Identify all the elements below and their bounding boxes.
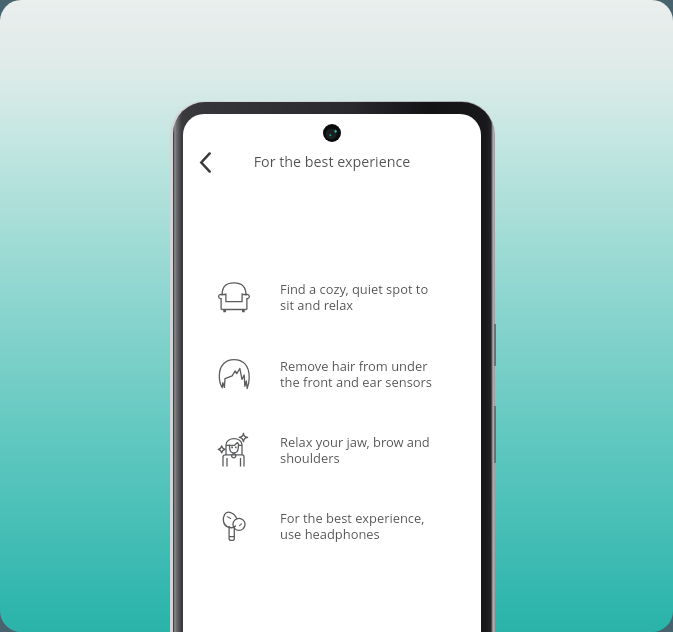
staticText: Relax your jaw, brow and shoulders	[280, 433, 430, 467]
staticText: For the best experience, use headphones	[280, 509, 425, 543]
button[interactable]: Relax your jaw, brow and shoulders	[183, 421, 481, 473]
staticText: Find a cozy, quiet spot to sit and relax	[280, 280, 429, 314]
button[interactable]: For the best experience, use headphones	[183, 497, 481, 549]
staticText: Remove hair from under the front and ear…	[280, 357, 432, 391]
staticText: For the best experience	[183, 152, 481, 171]
button[interactable]: Remove hair from under the front and ear…	[183, 345, 481, 397]
button[interactable]: Back	[189, 146, 221, 178]
button[interactable]: Find a cozy, quiet spot to sit and relax	[183, 268, 481, 320]
